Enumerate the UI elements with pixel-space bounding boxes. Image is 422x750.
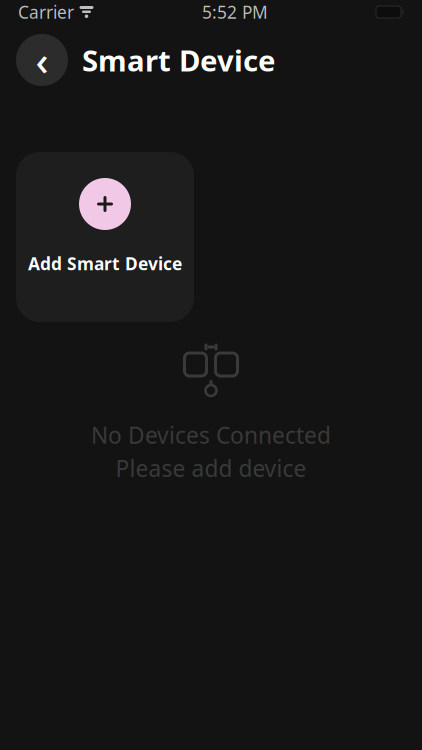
staticText: No Devices Connected: [91, 420, 331, 450]
staticText: Please add device: [115, 453, 306, 483]
button[interactable]: Add Smart Device: [16, 152, 194, 322]
button[interactable]: Back: [16, 34, 68, 86]
staticText: 5:52 PM: [202, 0, 268, 23]
staticText: Carrier: [18, 0, 74, 23]
staticText: ‹: [35, 33, 48, 86]
staticText: Smart Device: [82, 40, 276, 79]
staticText: Add Smart Device: [28, 252, 182, 275]
